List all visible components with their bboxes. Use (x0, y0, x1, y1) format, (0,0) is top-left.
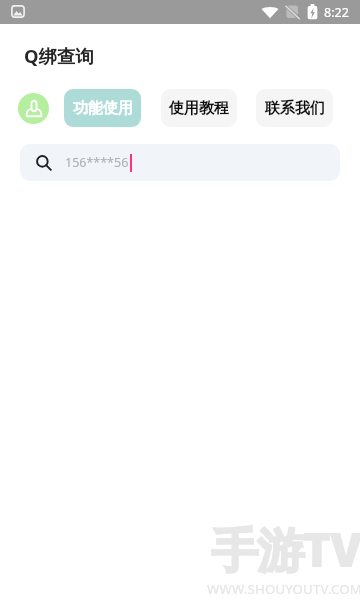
button[interactable]: Account (18, 93, 49, 124)
staticText: 联系我们 (265, 99, 325, 118)
button[interactable]: 联系我们 (256, 89, 333, 127)
staticText: 功能使用 (73, 99, 133, 118)
staticText: Q绑查询 (24, 43, 94, 68)
staticText: 使用教程 (169, 99, 229, 118)
staticText: WWW.SHOUYOUTV.COM (207, 580, 360, 598)
staticText: 8:22 (324, 4, 349, 21)
button[interactable]: 156****56 (20, 144, 340, 181)
button[interactable]: 使用教程 (161, 89, 237, 127)
staticText: 156****56 (65, 154, 129, 171)
staticText: 手游TV (211, 517, 360, 581)
button[interactable]: 功能使用 (64, 89, 141, 127)
